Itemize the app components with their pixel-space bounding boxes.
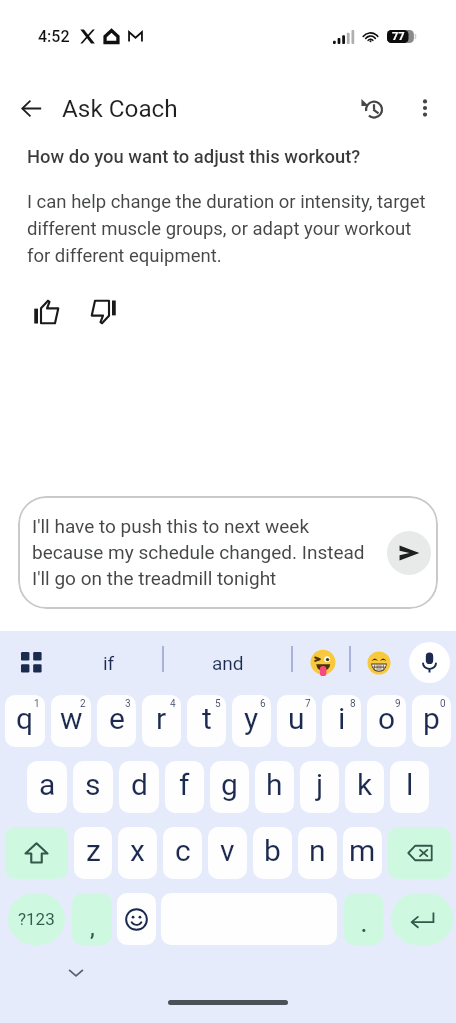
button[interactable]: Thumbs down [84,293,122,331]
staticText: 0 [440,698,446,710]
button[interactable]: f [165,761,204,813]
staticText: t [202,701,212,736]
button[interactable]: Send [387,531,431,575]
button[interactable]: e [97,695,136,747]
button[interactable]: Grinning face emoji [355,631,403,695]
button[interactable]: p [412,695,451,747]
staticText: I'll have to push this to next week beca… [32,515,385,590]
button[interactable]: Back [9,86,53,130]
staticText: l [406,767,414,802]
staticText: 4:52 [38,27,70,46]
button[interactable]: . [344,893,383,945]
button[interactable]: l [390,761,429,813]
staticText: e [109,701,125,736]
button[interactable]: m [343,827,382,879]
staticText: ?123 [18,909,55,929]
button[interactable]: o [367,695,406,747]
staticText: r [156,701,167,736]
staticText: , [90,916,95,939]
button[interactable]: y [232,695,271,747]
staticText: p [423,701,440,736]
staticText: if [103,652,115,674]
staticText: 5 [215,698,221,710]
button[interactable]: Hide keyboard [60,957,92,989]
staticText: z [86,833,101,868]
button[interactable]: d [119,761,159,813]
button[interactable]: i [322,695,361,747]
button[interactable]: Shift [5,827,68,879]
button[interactable]: b [253,827,292,879]
button[interactable]: x [118,827,157,879]
staticText: n [309,833,326,868]
button[interactable]: q [5,695,45,747]
staticText: k [357,767,373,802]
staticText: 3 [125,698,131,710]
button[interactable]: Enter [391,893,453,945]
button[interactable]: a [27,761,67,813]
button[interactable]: if [55,631,163,695]
button[interactable]: ?123 [8,893,65,945]
button[interactable]: s [73,761,113,813]
button[interactable]: c [163,827,202,879]
button[interactable]: u [277,695,316,747]
staticText: How do you want to adjust this workout? [27,146,361,168]
staticText: s [85,767,101,802]
button[interactable]: , [72,893,112,945]
button[interactable]: j [300,761,339,813]
button[interactable]: More options [403,86,447,130]
staticText: 1 [34,698,40,710]
button[interactable]: Voice input [409,642,450,683]
staticText: y [244,701,259,736]
staticText: 2 [80,698,86,710]
staticText: 8 [350,698,356,710]
button[interactable]: g [210,761,249,813]
staticText: u [288,701,305,736]
staticText: 4 [170,698,176,710]
button[interactable]: Keyboard options [11,642,51,682]
button[interactable]: v [208,827,247,879]
staticText: 9 [395,698,401,710]
staticText: g [221,767,238,802]
button[interactable]: n [298,827,337,879]
staticText: i [338,701,346,736]
button[interactable]: w [51,695,91,747]
staticText: w [60,701,83,736]
button[interactable]: I'll have to push this to next week beca… [18,496,438,609]
staticText: 6 [260,698,266,710]
staticText: I can help change the duration or intens… [27,191,430,266]
staticText: o [378,701,396,736]
button[interactable]: Thumbs up [27,293,65,331]
staticText: m [349,833,376,868]
staticText: h [266,767,283,802]
staticText: 77 [392,30,405,43]
staticText: 7 [305,698,311,710]
staticText: f [179,767,190,802]
staticText: b [264,833,281,868]
button[interactable]: h [255,761,294,813]
staticText: q [16,701,34,736]
button[interactable]: Winking face emoji [300,631,346,695]
button[interactable]: k [345,761,384,813]
button[interactable]: and [170,631,286,695]
staticText: a [39,767,56,802]
staticText: v [220,833,235,868]
staticText: and [212,652,244,674]
button[interactable]: History [349,86,393,130]
button[interactable]: t [187,695,226,747]
button[interactable]: Backspace [388,827,451,879]
staticText: d [131,767,148,802]
staticText: . [361,913,367,936]
staticText: j [316,767,324,802]
staticText: x [130,833,145,868]
staticText: Ask Coach [62,94,178,122]
button[interactable]: r [142,695,181,747]
button[interactable]: z [74,827,112,879]
staticText: c [175,833,191,868]
button[interactable]: Emoji [117,893,156,945]
